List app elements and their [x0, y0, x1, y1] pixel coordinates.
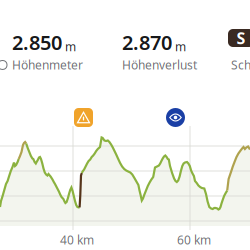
staticText: Sch: [231, 57, 250, 73]
staticText: 60 km: [177, 232, 211, 248]
staticText: m: [175, 39, 186, 54]
staticText: 40 km: [60, 232, 94, 248]
button[interactable]: Warning waypoint: [74, 108, 93, 127]
staticText: S: [236, 27, 245, 49]
staticText: Höhenmeter: [12, 57, 83, 73]
staticText: 2.870: [122, 29, 172, 56]
staticText: m: [65, 39, 76, 54]
staticText: 2.850: [12, 29, 62, 56]
staticText: Höhenverlust: [122, 57, 197, 73]
button[interactable]: Viewpoint: [166, 108, 185, 127]
